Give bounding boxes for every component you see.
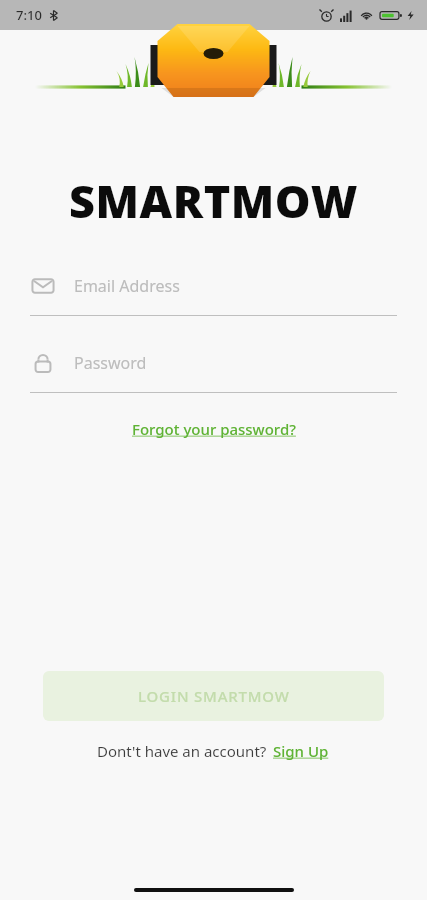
button[interactable]: LOGIN SMARTMOW: [43, 671, 384, 721]
button[interactable]: Forgot your password?: [126, 415, 302, 443]
button[interactable]: Email: [30, 266, 397, 316]
staticText: Forgot your password?: [132, 419, 296, 439]
other: Password: [31, 351, 55, 375]
staticText: Email Address: [74, 275, 180, 297]
staticText: LOGIN SMARTMOW: [138, 686, 290, 706]
other: Email: [31, 274, 55, 298]
staticText: Sign Up: [273, 741, 329, 761]
staticText: Dont't have an account?: [97, 741, 271, 761]
staticText: Password: [74, 352, 147, 374]
staticText: SMARTMOW: [69, 170, 358, 222]
button[interactable]: Sign Up: [271, 739, 331, 763]
staticText: 7:10: [16, 6, 42, 24]
button[interactable]: Password: [30, 343, 397, 393]
